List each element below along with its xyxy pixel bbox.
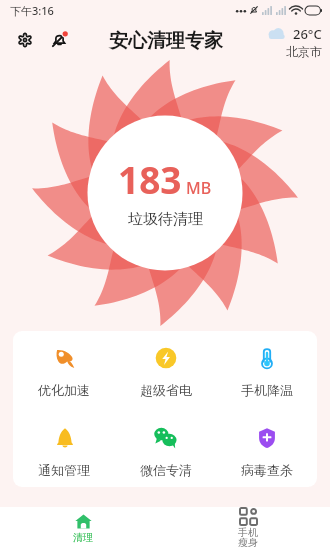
button[interactable]: 通知管理 xyxy=(13,426,115,478)
button[interactable]: 微信专清 xyxy=(115,426,216,478)
button[interactable]: 优化加速 xyxy=(13,346,115,398)
button[interactable]: 清理 xyxy=(0,507,165,550)
button[interactable]: 病毒查杀 xyxy=(216,426,317,478)
staticText: MB xyxy=(186,177,212,199)
staticText: 微信专清 xyxy=(140,462,192,478)
staticText: 手机降温 xyxy=(241,382,293,398)
staticText: 手机 瘦身 xyxy=(238,526,258,549)
button[interactable]: 手机降温 xyxy=(216,346,317,398)
staticText: 优化加速 xyxy=(38,382,90,398)
other: 清理 xyxy=(75,514,92,529)
button[interactable]: 通知 xyxy=(46,26,72,52)
staticText: 垃圾待清理 xyxy=(128,210,203,229)
staticText: 安心清理专家 xyxy=(109,29,223,53)
button[interactable]: 设置 xyxy=(12,27,38,53)
staticText: 183 xyxy=(118,154,182,204)
staticText: 超级省电 xyxy=(140,382,192,398)
button[interactable]: 手机瘦身 xyxy=(165,507,330,550)
staticText: 下午3:16 xyxy=(10,3,54,18)
other: 手机瘦身 xyxy=(240,508,257,525)
staticText: 26°C xyxy=(293,25,322,43)
staticText: 病毒查杀 xyxy=(241,462,293,478)
button[interactable]: 超级省电 xyxy=(115,346,216,398)
staticText: 通知管理 xyxy=(38,462,90,478)
staticText: 清理 xyxy=(73,531,93,544)
staticText: 北京市 xyxy=(286,44,322,59)
